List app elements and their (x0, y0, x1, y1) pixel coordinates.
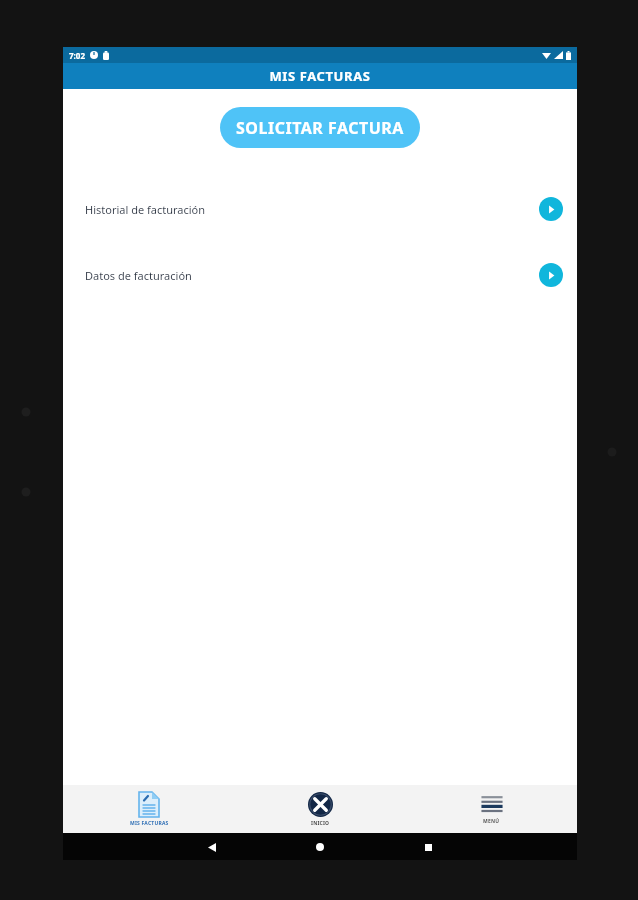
button[interactable]: SOLICITAR FACTURA (220, 107, 420, 148)
button[interactable]: Recent apps (417, 836, 439, 858)
other: Abrir Historial de facturación (539, 197, 563, 221)
other: Abrir Datos de facturación (539, 263, 563, 287)
button[interactable]: Historial de facturación (63, 192, 577, 226)
staticText: MENÚ (483, 818, 500, 825)
button[interactable]: Home (309, 836, 331, 858)
button[interactable]: Datos de facturación (63, 258, 577, 292)
staticText: INICIO (311, 820, 330, 827)
staticText: Historial de facturación (85, 202, 206, 217)
staticText: 7:02 (69, 50, 85, 61)
button[interactable]: Back (201, 836, 223, 858)
staticText: SOLICITAR FACTURA (236, 117, 404, 139)
button[interactable]: INICIO (235, 785, 406, 833)
button[interactable]: MENÚ (406, 785, 577, 833)
staticText: Datos de facturación (85, 268, 192, 283)
staticText: MIS FACTURAS (130, 820, 169, 827)
button[interactable]: MIS FACTURAS (63, 785, 235, 833)
staticText: MIS FACTURAS (269, 67, 371, 85)
